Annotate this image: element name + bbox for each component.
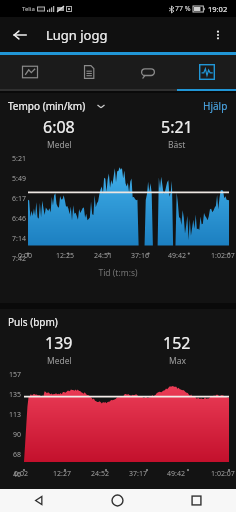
staticText: 37:16: [131, 251, 149, 261]
staticText: Tid (t:m:s): [0, 267, 236, 279]
button[interactable]: Hjälp: [203, 99, 228, 113]
staticText: 6:08: [43, 116, 75, 138]
staticText: 5:21: [161, 116, 193, 138]
staticText: 6:46: [12, 214, 26, 224]
staticText: 12:27: [53, 469, 71, 479]
staticText: Tempo (min/km): [8, 99, 86, 113]
button[interactable]: Home: [78, 489, 157, 512]
staticText: 24:51: [94, 251, 112, 261]
staticText: 139: [45, 332, 73, 354]
staticText: Telia: [22, 5, 35, 13]
staticText: 7:42: [12, 254, 26, 261]
staticText: 12:25: [56, 251, 74, 261]
staticText: 68: [13, 450, 22, 460]
staticText: 1:02:07: [211, 469, 235, 479]
button[interactable]: Tempo (min/km): [8, 99, 106, 113]
button[interactable]: Back: [0, 489, 78, 512]
button[interactable]: Laps: [118, 55, 177, 89]
staticText: Hjälp: [203, 99, 228, 113]
staticText: 37:17: [129, 469, 147, 479]
staticText: Puls (bpm): [8, 315, 58, 329]
staticText: 157: [9, 370, 22, 380]
button[interactable]: Details: [59, 55, 118, 89]
staticText: 5:21: [12, 154, 26, 164]
button[interactable]: Map: [0, 55, 59, 89]
button[interactable]: Charts: [177, 55, 236, 89]
staticText: 135: [9, 390, 22, 400]
staticText: 49:42: [168, 251, 186, 261]
staticText: 0:02: [14, 469, 28, 479]
staticText: 1:02:07: [211, 251, 235, 261]
staticText: 152: [163, 332, 191, 354]
staticText: 113: [9, 410, 22, 420]
staticText: 49:42: [167, 469, 185, 479]
staticText: 24:52: [91, 469, 109, 479]
button[interactable]: Back: [7, 22, 33, 48]
staticText: 0:00: [18, 251, 32, 261]
button[interactable]: More options: [205, 22, 231, 48]
staticText: Medel: [47, 139, 72, 151]
staticText: 5:49: [12, 174, 26, 184]
button[interactable]: Recents: [157, 489, 236, 512]
staticText: 77 %: [175, 4, 191, 14]
staticText: Max: [169, 355, 186, 367]
staticText: 19:02: [208, 4, 228, 14]
staticText: 6:17: [12, 194, 26, 204]
staticText: Medel: [47, 355, 72, 367]
staticText: 90: [13, 430, 22, 440]
staticText: Lugn jogg: [46, 26, 108, 44]
staticText: Bäst: [168, 139, 186, 151]
staticText: 46: [13, 470, 22, 479]
staticText: 7:14: [12, 234, 26, 244]
